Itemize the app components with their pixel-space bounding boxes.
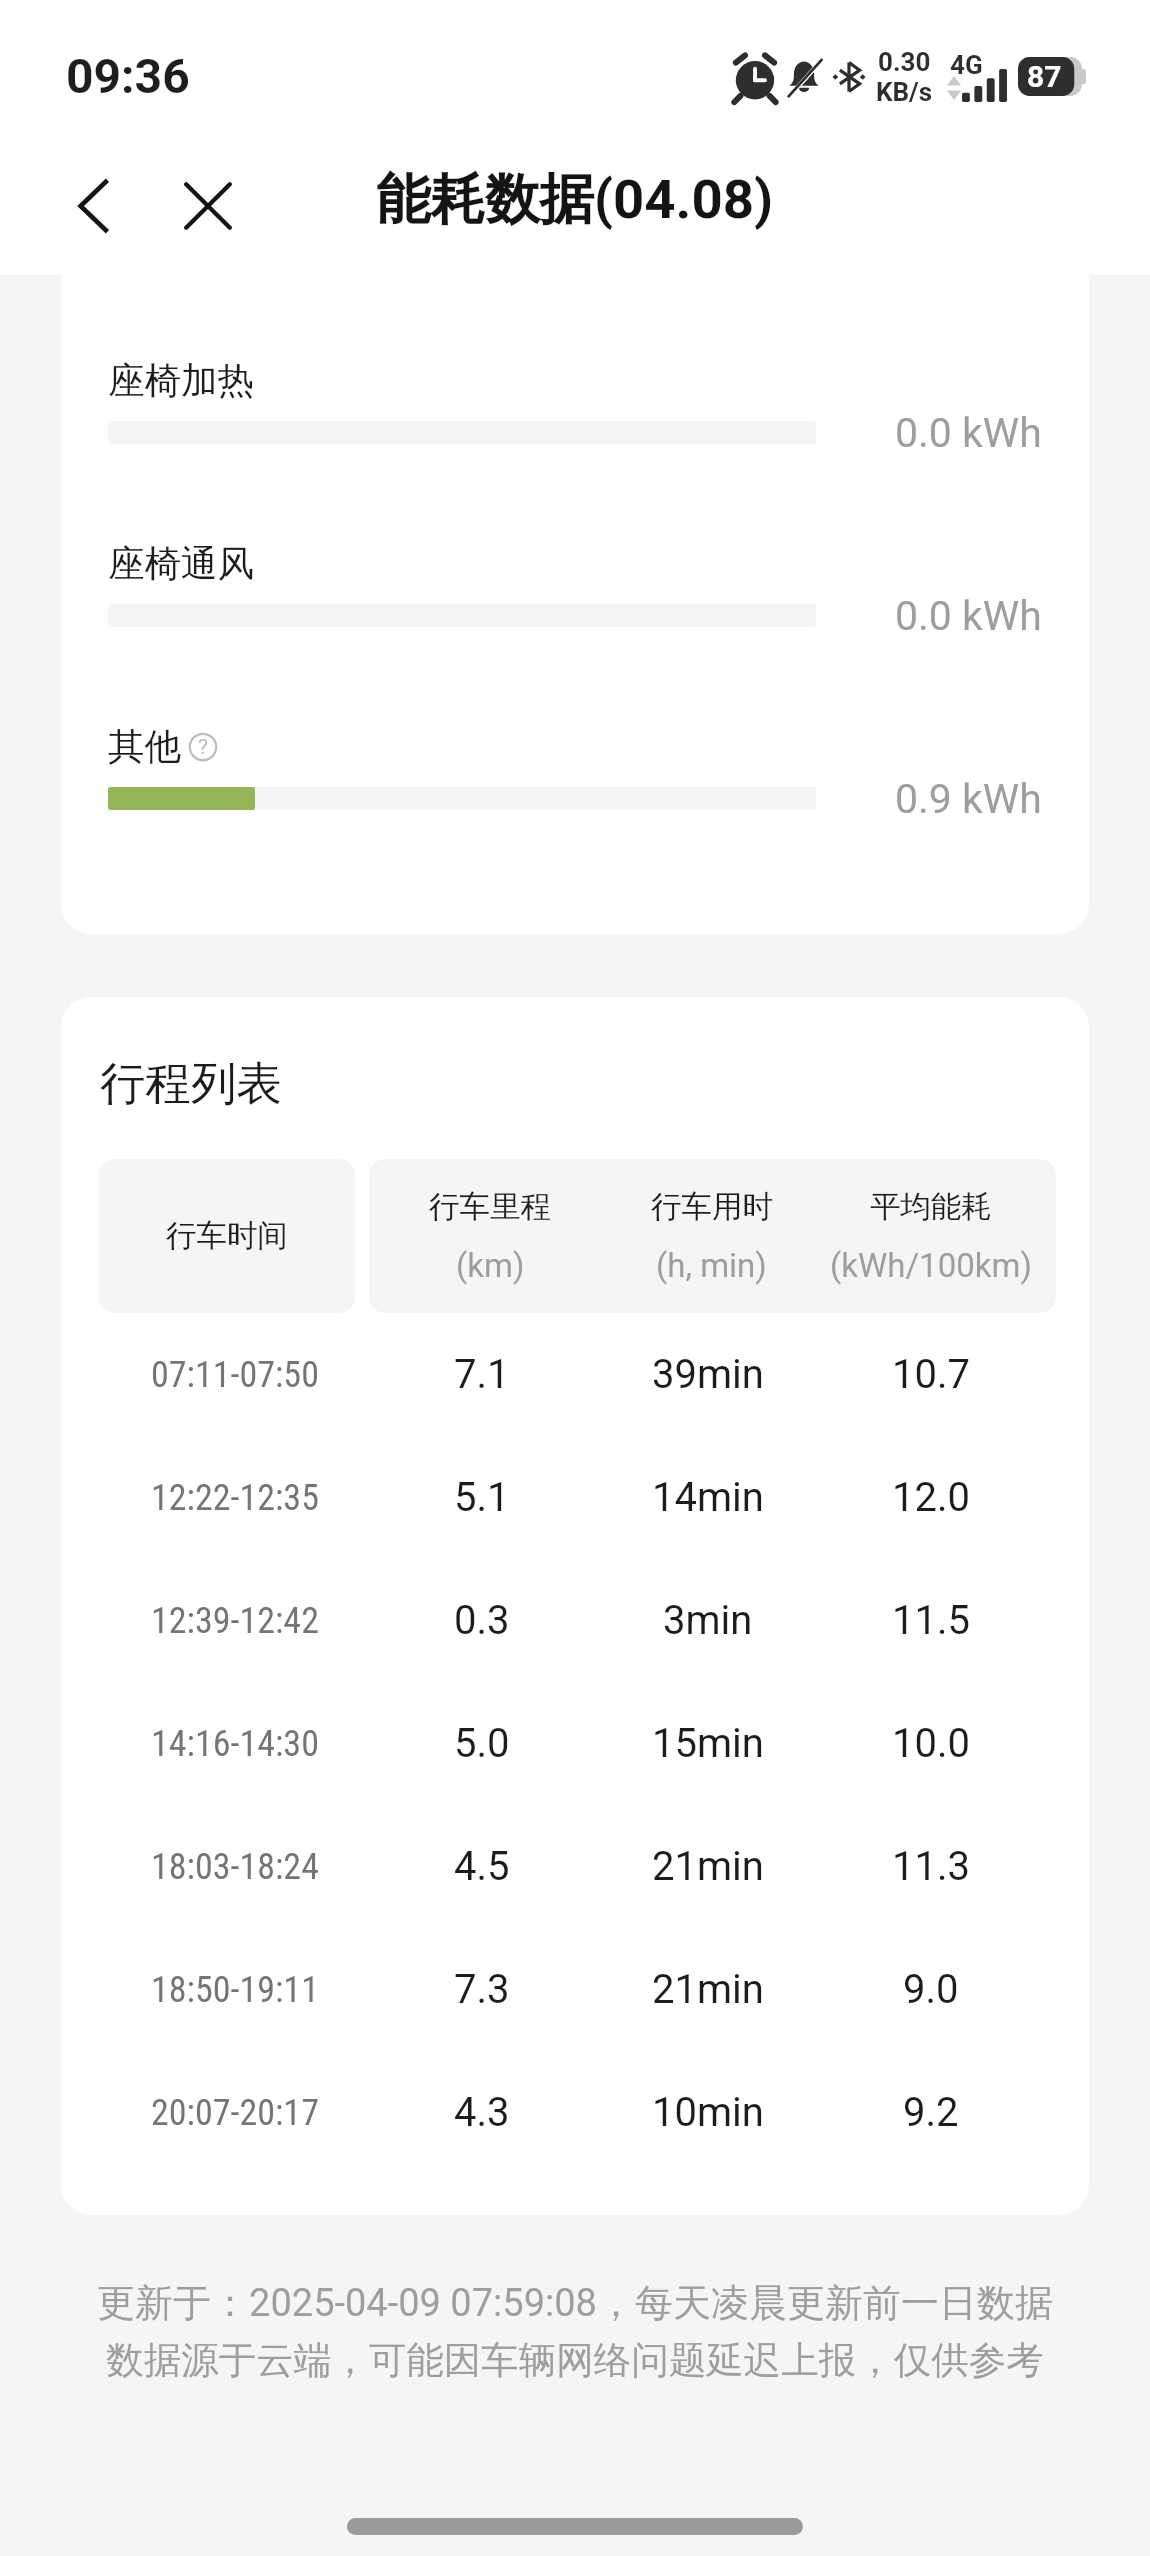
- button[interactable]: 20:07-20:17: [99, 2051, 1056, 2174]
- staticText: 20:07-20:17: [151, 2092, 319, 2134]
- staticText: 更新于：2025-04-09 07:59:08，每天凌晨更新前一日数据: [40, 2279, 1110, 2327]
- staticText: 0.0 kWh: [895, 592, 1042, 640]
- staticText: 能耗数据(04.08): [376, 166, 774, 235]
- staticText: 87: [1027, 59, 1062, 94]
- staticText: (km): [456, 1246, 525, 1285]
- staticText: 14min: [652, 1474, 764, 1521]
- staticText: 15min: [652, 1720, 764, 1767]
- staticText: 07:11-07:50: [151, 1354, 319, 1396]
- staticText: 4.5: [454, 1843, 510, 1890]
- staticText: 9.2: [903, 2089, 959, 2136]
- button[interactable]: Info: [182, 726, 224, 768]
- staticText: 座椅通风: [108, 541, 254, 587]
- staticText: (kWh/100km): [830, 1246, 1032, 1285]
- staticText: 14:16-14:30: [151, 1723, 319, 1765]
- button[interactable]: Close: [165, 163, 251, 249]
- staticText: 座椅加热: [108, 358, 254, 404]
- button[interactable]: 14:16-14:30: [99, 1682, 1056, 1805]
- staticText: 0.9 kWh: [895, 775, 1042, 823]
- staticText: 21min: [652, 1843, 764, 1890]
- button[interactable]: 12:39-12:42: [99, 1559, 1056, 1682]
- staticText: 行车里程: [429, 1188, 551, 1226]
- staticText: 行车时间: [166, 1217, 288, 1255]
- staticText: 18:50-19:11: [151, 1969, 319, 2011]
- staticText: 11.5: [892, 1597, 970, 1644]
- staticText: 12:22-12:35: [151, 1477, 319, 1519]
- staticText: 7.1: [454, 1351, 510, 1398]
- staticText: 09:36: [66, 48, 190, 104]
- staticText: 7.3: [454, 1966, 510, 2013]
- staticText: 39min: [652, 1351, 764, 1398]
- staticText: 行程列表: [100, 1055, 282, 1112]
- staticText: 0.0 kWh: [895, 409, 1042, 457]
- staticText: 12:39-12:42: [151, 1600, 319, 1642]
- staticText: 9.0: [903, 1966, 959, 2013]
- staticText: 11.3: [892, 1843, 970, 1890]
- button[interactable]: 12:22-12:35: [99, 1436, 1056, 1559]
- staticText: 10.0: [892, 1720, 970, 1767]
- button[interactable]: Back: [51, 163, 137, 249]
- staticText: 10min: [652, 2089, 764, 2136]
- staticText: KB/s: [876, 77, 933, 107]
- button[interactable]: 18:50-19:11: [99, 1928, 1056, 2051]
- staticText: 12.0: [892, 1474, 970, 1521]
- staticText: 0.30: [878, 47, 931, 77]
- staticText: 其他: [108, 724, 181, 770]
- staticText: 0.3: [454, 1597, 510, 1644]
- staticText: ?: [198, 735, 208, 760]
- staticText: (h, min): [656, 1246, 767, 1285]
- button[interactable]: 18:03-18:24: [99, 1805, 1056, 1928]
- staticText: 行车用时: [651, 1188, 773, 1226]
- button[interactable]: 07:11-07:50: [99, 1313, 1056, 1436]
- staticText: 5.0: [454, 1720, 510, 1767]
- staticText: 4.3: [454, 2089, 510, 2136]
- staticText: 10.7: [892, 1351, 970, 1398]
- staticText: 3min: [663, 1597, 753, 1644]
- staticText: 平均能耗: [870, 1188, 992, 1226]
- staticText: 数据源于云端，可能因车辆网络问题延迟上报，仅供参考: [40, 2337, 1110, 2384]
- staticText: 18:03-18:24: [151, 1846, 319, 1888]
- staticText: 5.1: [454, 1474, 510, 1521]
- staticText: 21min: [652, 1966, 764, 2013]
- staticText: 4G: [950, 50, 983, 80]
